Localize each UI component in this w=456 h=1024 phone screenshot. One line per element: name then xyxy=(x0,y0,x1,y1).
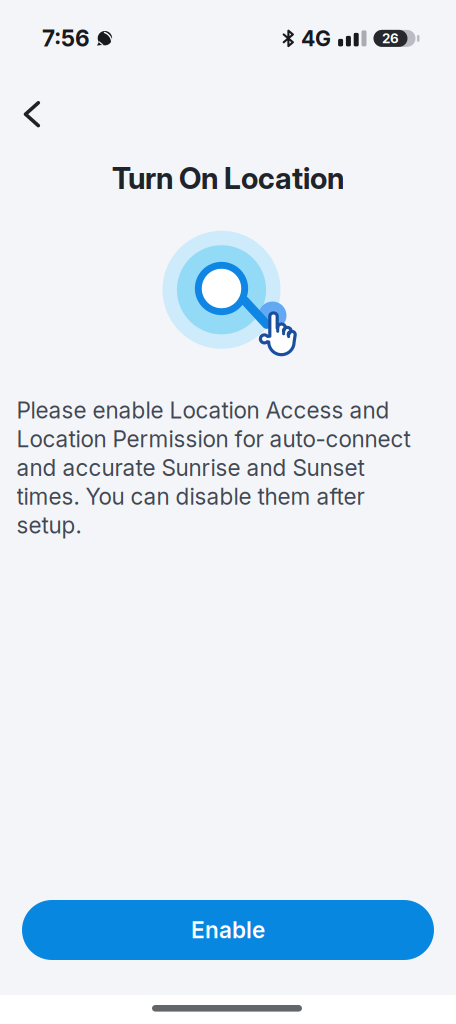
staticText: 7:56 xyxy=(42,25,90,52)
staticText: 26 xyxy=(382,30,399,46)
button[interactable]: Enable xyxy=(22,900,434,960)
button[interactable]: Back xyxy=(0,0,40,127)
staticText: 4G xyxy=(301,26,331,51)
staticText: Please enable Location Access and Locati… xyxy=(16,397,410,539)
staticText: Enable xyxy=(191,917,265,943)
staticText: Turn On Location xyxy=(112,160,344,196)
